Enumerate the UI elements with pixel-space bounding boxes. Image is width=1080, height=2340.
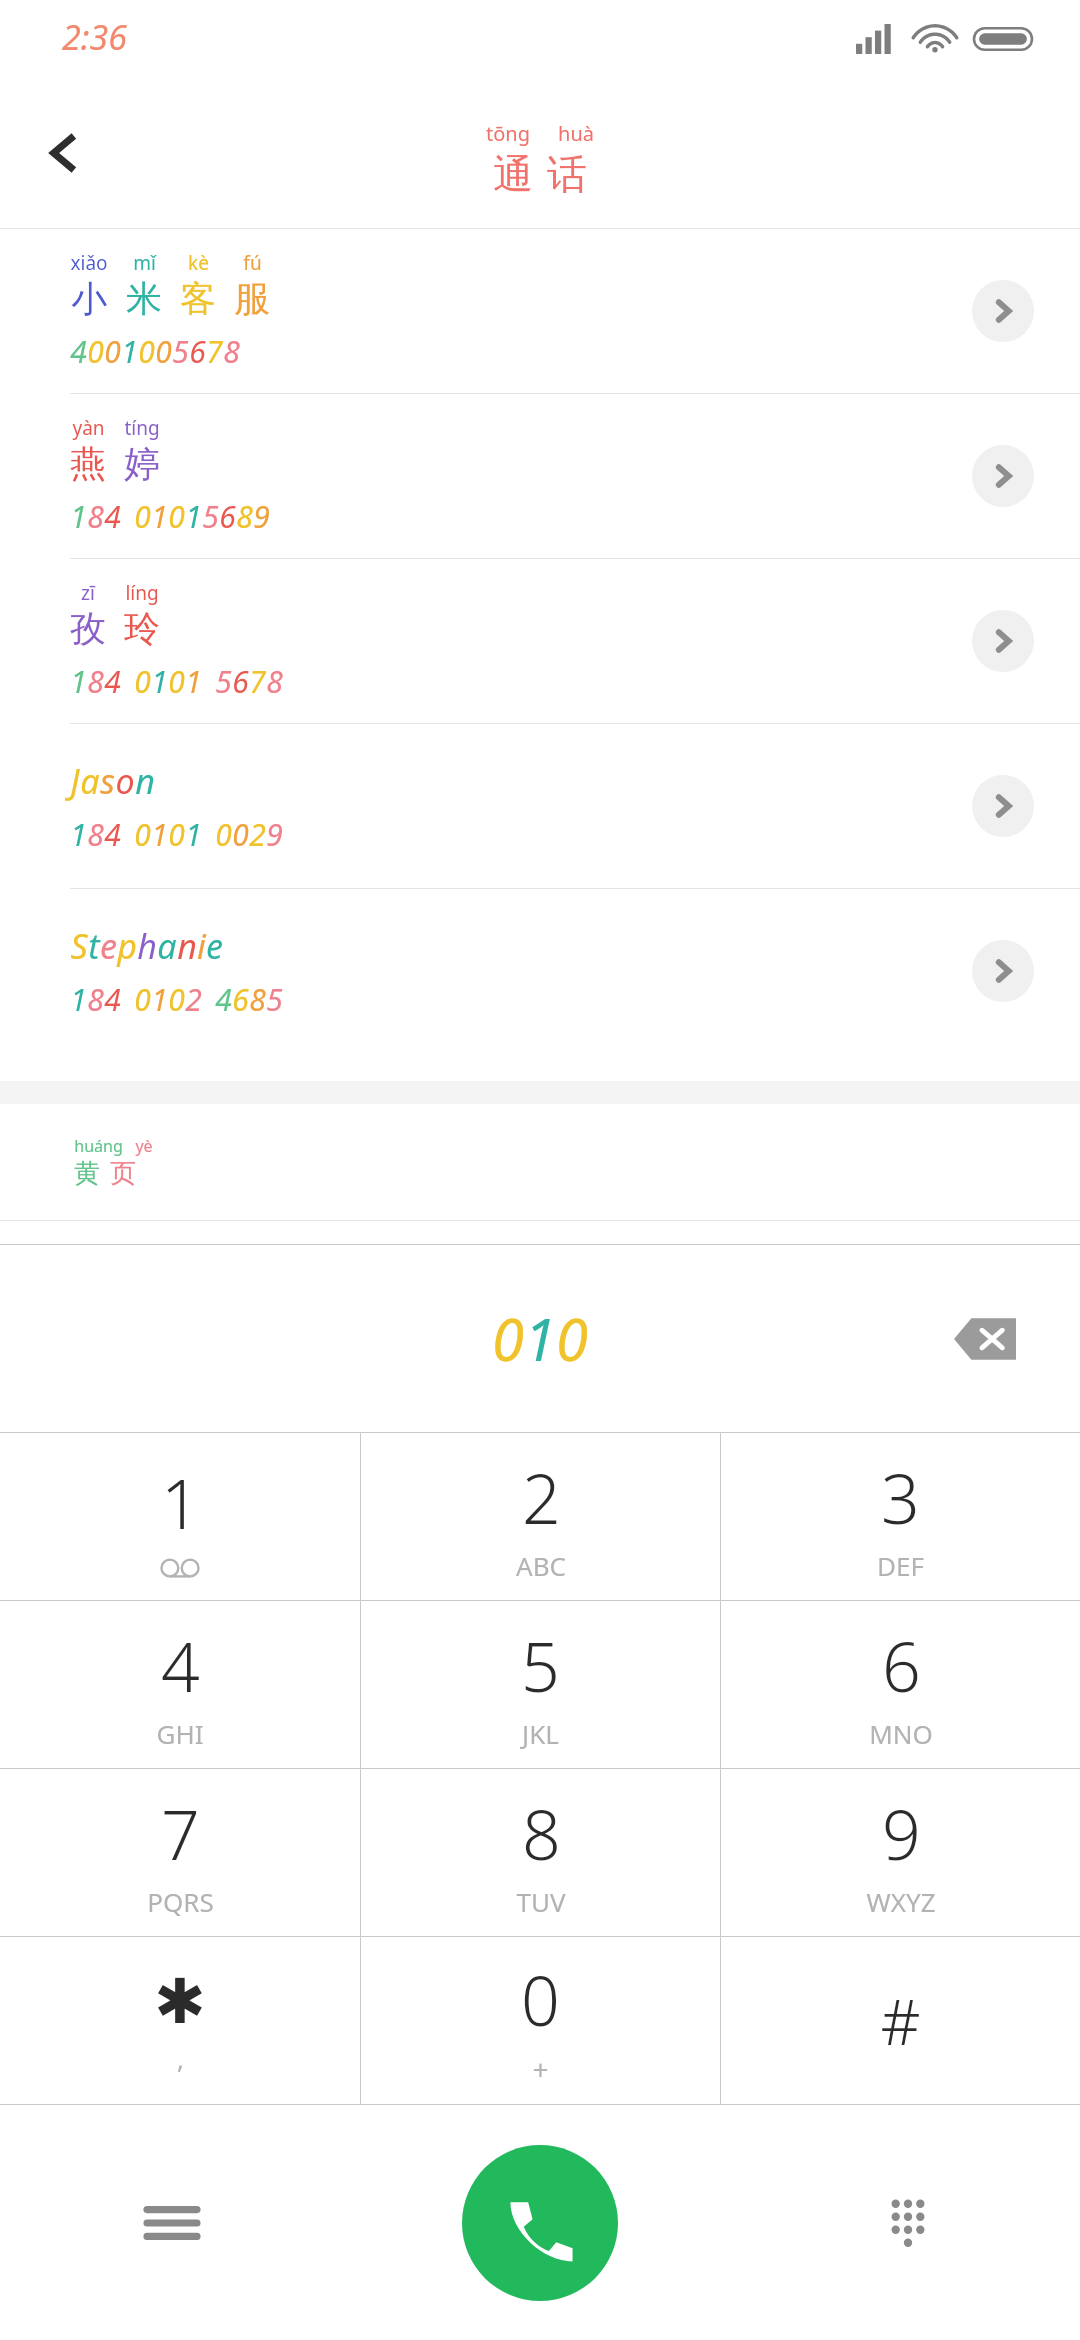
- staticText: 2:36: [62, 14, 127, 60]
- button[interactable]: Details: [972, 610, 1034, 672]
- staticText: 1: [524, 1299, 556, 1378]
- staticText: 8: [522, 1787, 561, 1880]
- staticText: 小: [71, 276, 107, 321]
- button[interactable]: 4: [0, 1601, 360, 1768]
- staticText: 8: [266, 661, 283, 702]
- staticText: yè: [135, 1135, 153, 1157]
- staticText: 0: [556, 1299, 588, 1378]
- button[interactable]: S: [0, 889, 1080, 1053]
- button[interactable]: Dialpad: [862, 2177, 954, 2269]
- staticText: 8: [249, 979, 266, 1020]
- staticText: 0: [134, 814, 151, 855]
- staticText: 1: [70, 661, 87, 702]
- staticText: 孜: [70, 606, 106, 651]
- button[interactable]: 9: [721, 1769, 1080, 1936]
- staticText: 6: [882, 1619, 921, 1712]
- staticText: 1: [70, 979, 87, 1020]
- button[interactable]: 6: [721, 1601, 1080, 1768]
- button[interactable]: 1: [0, 1433, 360, 1600]
- staticText: 通: [493, 149, 533, 199]
- staticText: 1: [151, 814, 168, 855]
- staticText: 1: [161, 1456, 200, 1549]
- button[interactable]: 2: [361, 1433, 720, 1600]
- staticText: 8: [87, 661, 104, 702]
- button[interactable]: Details: [972, 280, 1034, 342]
- staticText: 5: [215, 661, 232, 702]
- staticText: 8: [236, 496, 253, 537]
- staticText: J: [70, 758, 80, 804]
- button[interactable]: Details: [972, 445, 1034, 507]
- staticText: 4: [215, 979, 232, 1020]
- button[interactable]: Call: [462, 2145, 618, 2301]
- staticText: huáng: [74, 1135, 123, 1157]
- button[interactable]: J: [0, 724, 1080, 888]
- staticText: 5: [521, 1619, 560, 1712]
- staticText: o: [115, 758, 135, 804]
- staticText: #: [880, 1979, 921, 2063]
- button[interactable]: zī: [0, 559, 1080, 723]
- button[interactable]: Menu: [126, 2177, 218, 2269]
- button[interactable]: yàn: [0, 394, 1080, 558]
- staticText: h: [137, 923, 157, 969]
- staticText: MNO: [869, 1716, 933, 1751]
- button[interactable]: 3: [721, 1433, 1080, 1600]
- button[interactable]: Details: [972, 940, 1034, 1002]
- staticText: 1: [185, 496, 202, 537]
- button[interactable]: Backspace: [942, 1304, 1028, 1374]
- staticText: 燕: [70, 441, 106, 486]
- button[interactable]: ✱: [0, 1937, 360, 2104]
- staticText: 4: [104, 661, 121, 702]
- button[interactable]: #: [721, 1937, 1080, 2104]
- staticText: 9: [253, 496, 270, 537]
- staticText: 9: [882, 1787, 921, 1880]
- staticText: zī: [81, 580, 95, 606]
- staticText: t: [88, 923, 100, 969]
- staticText: i: [197, 923, 206, 969]
- staticText: 1: [70, 496, 87, 537]
- button[interactable]: Back: [20, 109, 108, 197]
- staticText: n: [177, 923, 197, 969]
- button[interactable]: xiǎo: [0, 1221, 1080, 1331]
- staticText: 2: [522, 1451, 561, 1544]
- staticText: 6: [232, 979, 249, 1020]
- staticText: p: [117, 923, 137, 969]
- button[interactable]: 0: [361, 1937, 720, 2104]
- staticText: 0: [134, 661, 151, 702]
- staticText: 页: [110, 1157, 136, 1190]
- button[interactable]: xiǎo: [0, 229, 1080, 393]
- staticText: mǐ: [133, 250, 156, 276]
- staticText: 4: [104, 814, 121, 855]
- button[interactable]: Details: [972, 775, 1034, 837]
- button[interactable]: huáng: [0, 1104, 1080, 1220]
- button[interactable]: 7: [0, 1769, 360, 1936]
- staticText: 1: [185, 661, 202, 702]
- staticText: PQRS: [147, 1884, 214, 1919]
- staticText: líng: [125, 580, 159, 606]
- button[interactable]: 5: [361, 1601, 720, 1768]
- staticText: 1: [151, 661, 168, 702]
- staticText: 6: [232, 661, 249, 702]
- staticText: 0: [138, 331, 155, 372]
- staticText: TUV: [516, 1884, 566, 1919]
- staticText: 6: [189, 331, 206, 372]
- staticText: ABC: [516, 1548, 566, 1583]
- staticText: 8: [87, 814, 104, 855]
- staticText: 2: [249, 814, 266, 855]
- staticText: 玲: [124, 606, 160, 651]
- button[interactable]: 8: [361, 1769, 720, 1936]
- staticText: kè: [188, 250, 209, 276]
- staticText: ,: [177, 2041, 184, 2076]
- staticText: 8: [87, 979, 104, 1020]
- staticText: huà: [558, 120, 594, 147]
- staticText: 1: [70, 814, 87, 855]
- staticText: 8: [223, 331, 240, 372]
- staticText: 7: [249, 661, 266, 702]
- staticText: e: [100, 923, 117, 969]
- staticText: 4: [161, 1619, 200, 1712]
- staticText: 0: [168, 814, 185, 855]
